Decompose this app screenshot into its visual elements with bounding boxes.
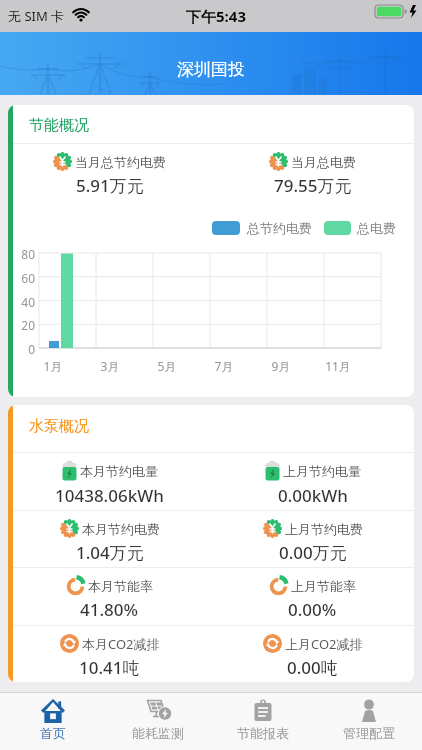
staticText: 上月节能率 (291, 578, 356, 594)
staticText: 本月节约电费 (82, 521, 160, 537)
staticText: 60 (8, 270, 35, 286)
staticText: 能耗监测 (132, 725, 184, 741)
staticText: 40 (8, 294, 35, 310)
staticText: 10438.06kWh (55, 484, 164, 507)
staticText: 7月 (204, 358, 244, 374)
staticText: 10.41吨 (79, 656, 140, 679)
button[interactable]: 管理配置 (316, 693, 422, 750)
staticText: 当月总节约电费 (75, 154, 166, 170)
button[interactable]: 本月节约电费 (8, 519, 211, 564)
staticText: 79.55万元 (274, 174, 352, 197)
button[interactable]: 上月CO2减排 (211, 634, 414, 679)
staticText: 首页 (40, 725, 66, 741)
staticText: 80 (8, 246, 35, 262)
staticText: 0 (8, 341, 35, 357)
staticText: 管理配置 (343, 725, 395, 741)
staticText: 0.00kWh (278, 484, 348, 507)
staticText: 0.00万元 (279, 541, 347, 564)
staticText: 9月 (261, 358, 301, 374)
staticText: 3月 (90, 358, 130, 374)
staticText: 当月总电费 (291, 154, 356, 170)
staticText: 上月CO2减排 (285, 635, 363, 653)
button[interactable]: 当月总节约电费 (8, 152, 211, 197)
staticText: 1.04万元 (76, 541, 144, 564)
staticText: 节能报表 (237, 725, 289, 741)
staticText: 水泵概况 (29, 417, 89, 436)
staticText: 0.00吨 (287, 656, 338, 679)
staticText: 5月 (147, 358, 187, 374)
staticText: 5.91万元 (76, 174, 144, 197)
button[interactable]: 节能报表 (210, 693, 316, 750)
staticText: 深圳国投 (177, 59, 245, 80)
staticText: 0.00% (288, 598, 337, 621)
staticText: 节能概况 (29, 116, 89, 135)
staticText: 本月CO2减排 (82, 635, 160, 653)
staticText: 无 SIM 卡 (8, 7, 65, 25)
button[interactable]: 上月节约电费 (211, 519, 414, 564)
button[interactable]: 本月CO2减排 (8, 634, 211, 679)
staticText: 总节约电费 (247, 220, 312, 236)
staticText: 本月节约电量 (80, 463, 158, 479)
staticText: 下午5:43 (186, 6, 246, 26)
staticText: 20 (8, 317, 35, 333)
staticText: 总电费 (357, 220, 396, 236)
staticText: 11月 (318, 358, 358, 374)
staticText: 41.80% (80, 598, 139, 621)
staticText: 上月节约电量 (283, 463, 361, 479)
staticText: 1月 (33, 358, 73, 374)
staticText: 上月节约电费 (285, 521, 363, 537)
button[interactable]: 上月节能率 (211, 576, 414, 621)
button[interactable]: 能耗监测 (105, 693, 210, 750)
button[interactable]: 上月节约电量 (211, 461, 414, 507)
button[interactable]: 本月节约电量 (8, 461, 211, 507)
button[interactable]: 本月节能率 (8, 576, 211, 621)
button[interactable]: 首页 (0, 693, 105, 750)
button[interactable]: 当月总电费 (211, 152, 414, 197)
staticText: 本月节能率 (88, 578, 153, 594)
